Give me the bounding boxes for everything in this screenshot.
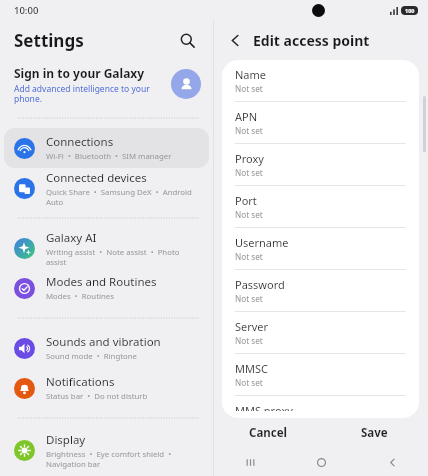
staticText: Not set (235, 83, 263, 94)
button[interactable]: Connected devices (4, 168, 209, 208)
staticText: Not set (235, 209, 263, 220)
button[interactable]: Galaxy AI (4, 228, 209, 268)
button[interactable]: Back (357, 448, 428, 476)
button[interactable]: Recents (214, 448, 286, 476)
staticText: 10:00 (14, 4, 39, 17)
staticText: Password (235, 277, 285, 292)
staticText: Sign in to your Galaxy (14, 65, 145, 81)
staticText: Notifications (46, 374, 115, 390)
staticText: Sound mode • Ringtone (46, 351, 137, 362)
staticText: MMS proxy (235, 403, 293, 411)
button[interactable]: Modes and Routines (4, 268, 209, 308)
staticText: Not set (235, 335, 263, 346)
staticText: Connections (46, 134, 114, 150)
staticText: Server (235, 319, 269, 334)
button[interactable]: Port (222, 186, 419, 227)
staticText: Galaxy AI (46, 230, 97, 246)
staticText: Username (235, 235, 289, 250)
button[interactable]: Connections (4, 128, 209, 168)
staticText: Proxy (235, 151, 264, 166)
button[interactable]: Save (321, 418, 428, 448)
staticText: Modes and Routines (46, 274, 157, 290)
staticText: Quick Share • Samsung DeX • Android Auto (46, 187, 201, 207)
button[interactable]: Notifications (4, 368, 209, 408)
staticText: Connected devices (46, 170, 147, 186)
staticText: Add advanced intelligence to your phone. (14, 83, 171, 104)
staticText: APN (235, 109, 258, 124)
button[interactable]: Search (171, 24, 203, 56)
staticText: Edit access point (253, 31, 370, 50)
staticText: Not set (235, 125, 263, 136)
button[interactable]: Proxy (222, 144, 419, 185)
button[interactable]: Cancel (214, 418, 321, 448)
staticText: Cancel (249, 425, 287, 441)
staticText: Not set (235, 167, 263, 178)
staticText: Not set (235, 251, 263, 262)
button[interactable]: Sign in to your Galaxy (0, 60, 213, 108)
staticText: Wi-Fi • Bluetooth • SIM manager (46, 151, 172, 162)
staticText: Sounds and vibration (46, 334, 161, 350)
button[interactable]: Home (286, 448, 357, 476)
button[interactable]: APN (222, 102, 419, 143)
staticText: Save (361, 425, 388, 441)
staticText: Name (235, 67, 267, 82)
staticText: Brightness • Eye comfort shield • Naviga… (46, 449, 201, 469)
button[interactable]: MMSC (222, 354, 419, 395)
button[interactable]: Back (220, 25, 250, 55)
staticText: Status bar • Do not disturb (46, 391, 148, 402)
staticText: Display (46, 432, 86, 448)
staticText: MMSC (235, 361, 268, 376)
button[interactable]: Sounds and vibration (4, 328, 209, 368)
staticText: Writing assist • Note assist • Photo ass… (46, 247, 201, 267)
staticText: Not set (235, 293, 263, 304)
button[interactable]: Server (222, 312, 419, 353)
staticText: 100 (405, 7, 415, 14)
button[interactable]: Username (222, 228, 419, 269)
staticText: Settings (14, 29, 84, 52)
button[interactable]: Password (222, 270, 419, 311)
button[interactable]: MMS proxy (222, 396, 419, 418)
staticText: Port (235, 193, 257, 208)
staticText: Not set (235, 377, 263, 388)
staticText: Modes • Routines (46, 291, 114, 302)
button[interactable]: Display (4, 428, 209, 472)
button[interactable]: Name (222, 60, 419, 101)
